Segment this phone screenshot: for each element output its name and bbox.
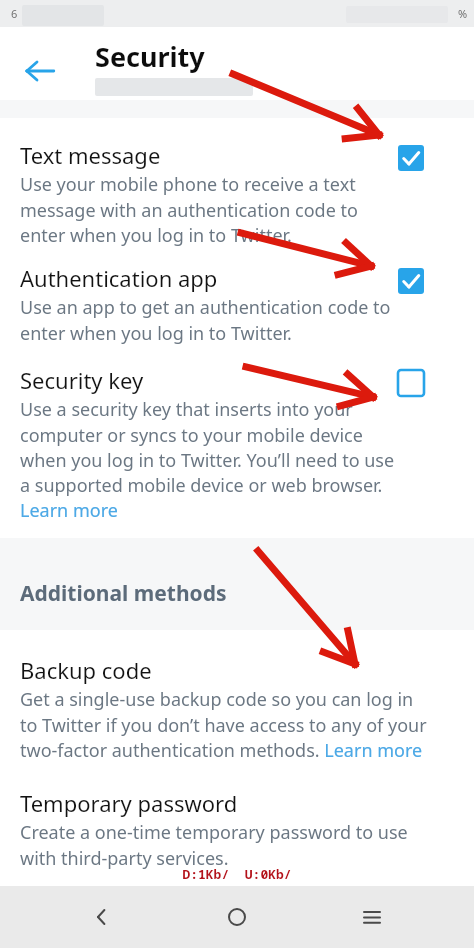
button[interactable]: Backup code bbox=[0, 655, 474, 762]
button[interactable]: Additional methods bbox=[0, 538, 474, 630]
staticText: Create a one-time temporary password to … bbox=[20, 820, 445, 870]
staticText: 6 bbox=[11, 6, 18, 21]
staticText: Authentication app bbox=[20, 263, 218, 293]
button[interactable]: Authentication app bbox=[0, 263, 474, 345]
button[interactable]: Back bbox=[78, 893, 126, 941]
staticText: Use an app to get an authentication code… bbox=[20, 295, 398, 345]
button[interactable]: Disabled bbox=[398, 370, 424, 396]
button[interactable]: Security key bbox=[0, 365, 474, 522]
staticText: % bbox=[458, 6, 468, 21]
button[interactable]: Home bbox=[213, 893, 261, 941]
staticText: Security key bbox=[20, 365, 144, 395]
button[interactable]: Text message bbox=[0, 118, 474, 247]
staticText: D:1Kb/ U:0Kb/ bbox=[0, 865, 474, 883]
staticText: Security bbox=[95, 38, 205, 75]
button[interactable]: Back bbox=[16, 47, 64, 95]
button[interactable]: Enabled bbox=[398, 268, 424, 294]
staticText: Additional methods bbox=[20, 579, 227, 608]
staticText: Backup code bbox=[20, 655, 152, 685]
staticText: Text message bbox=[20, 140, 161, 170]
staticText: Use a security key that inserts into you… bbox=[20, 397, 398, 522]
staticText: Get a single-use backup code so you can … bbox=[20, 687, 432, 762]
staticText: Temporary password bbox=[20, 788, 238, 818]
button[interactable]: Enabled bbox=[398, 145, 424, 171]
button[interactable]: Temporary password bbox=[0, 788, 474, 870]
staticText: Use your mobile phone to receive a text … bbox=[20, 172, 398, 247]
button[interactable]: Recent apps bbox=[348, 893, 396, 941]
